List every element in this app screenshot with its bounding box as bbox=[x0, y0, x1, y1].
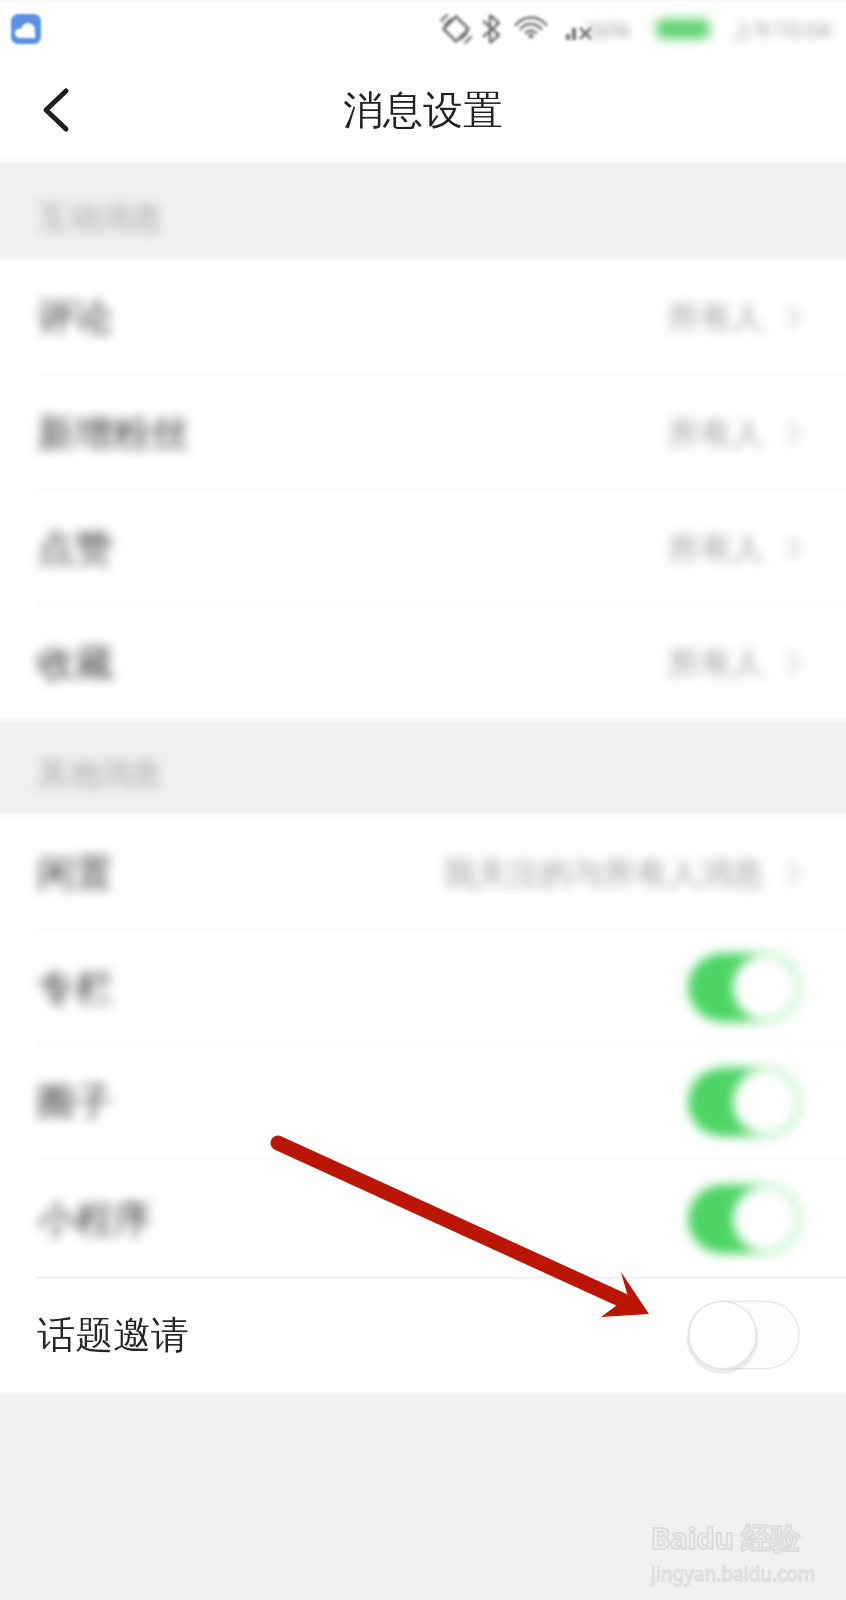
staticText: 互动消息 bbox=[38, 198, 162, 237]
button[interactable]: Switch on bbox=[664, 1161, 824, 1277]
button[interactable]: Switch on bbox=[664, 930, 824, 1045]
staticText: 点赞 bbox=[37, 524, 113, 572]
staticText: 我关注的与所有人消息 bbox=[444, 853, 764, 893]
staticText: 消息设置 bbox=[343, 85, 503, 135]
staticText: 所有人 bbox=[668, 413, 764, 453]
staticText: 专栏 bbox=[37, 964, 113, 1012]
button[interactable]: Switch on bbox=[664, 1045, 824, 1159]
staticText: 收藏 bbox=[37, 639, 113, 687]
button[interactable]: 圈子 bbox=[0, 1045, 846, 1159]
staticText: 闲置 bbox=[37, 849, 113, 897]
staticText: 圈子 bbox=[37, 1078, 113, 1126]
staticText: jingyan.baidu.com bbox=[651, 1561, 816, 1587]
button[interactable]: 闲置 bbox=[0, 815, 846, 930]
button[interactable]: 小程序 bbox=[0, 1159, 846, 1278]
staticText: 其他消息 bbox=[38, 754, 162, 793]
staticText: 新增粉丝 bbox=[37, 409, 189, 457]
staticText: 所有人 bbox=[668, 643, 764, 683]
staticText: 小程序 bbox=[37, 1195, 151, 1243]
button[interactable]: 话题邀请 bbox=[0, 1278, 846, 1392]
button[interactable]: 专栏 bbox=[0, 930, 846, 1045]
staticText: 上午10:04 bbox=[731, 14, 832, 44]
button[interactable]: 评论 bbox=[0, 259, 846, 375]
button[interactable]: Switch off bbox=[664, 1278, 824, 1392]
button[interactable]: 收藏 bbox=[0, 605, 846, 720]
staticText: 56% bbox=[587, 14, 631, 44]
staticText: Baidu 经验 bbox=[651, 1518, 800, 1558]
staticText: 话题邀请 bbox=[37, 1311, 189, 1359]
staticText: 评论 bbox=[37, 293, 113, 341]
staticText: 所有人 bbox=[668, 297, 764, 337]
button[interactable]: 新增粉丝 bbox=[0, 375, 846, 490]
button[interactable]: Back bbox=[11, 65, 101, 155]
button[interactable]: 点赞 bbox=[0, 490, 846, 605]
staticText: 所有人 bbox=[668, 528, 764, 568]
